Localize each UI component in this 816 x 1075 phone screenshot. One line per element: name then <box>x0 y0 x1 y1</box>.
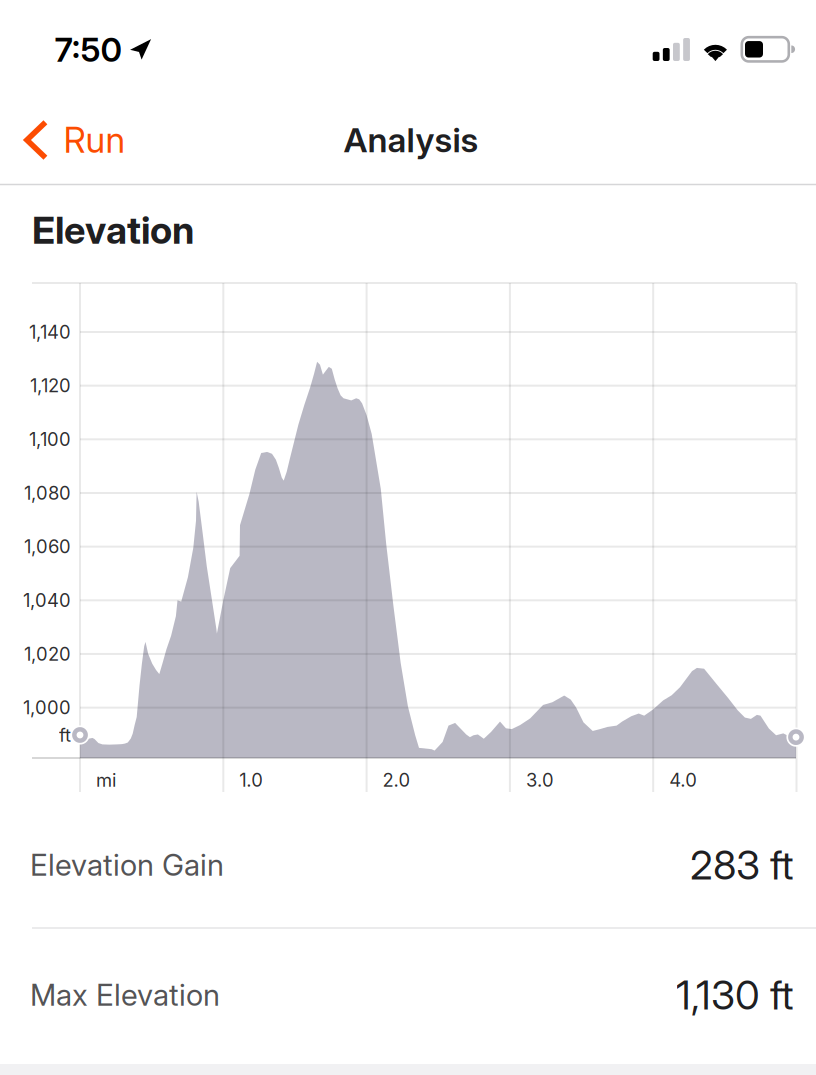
staticText: 283 ft <box>690 841 794 889</box>
staticText: 4.0 <box>669 769 697 791</box>
button[interactable]: Max Elevation <box>0 930 816 1060</box>
staticText: 1,140 <box>29 321 71 343</box>
staticText: 1,100 <box>29 428 71 450</box>
staticText: 1,120 <box>30 374 71 397</box>
staticText: 3.0 <box>526 769 554 791</box>
staticText: 1,080 <box>24 482 71 504</box>
staticText: 1,060 <box>24 535 71 558</box>
staticText: 1.0 <box>239 769 263 791</box>
button[interactable]: Run <box>0 96 122 184</box>
staticText: Run <box>63 119 125 161</box>
staticText: 1,130 ft <box>676 971 794 1019</box>
staticText: ft <box>59 724 71 746</box>
staticText: 1,020 <box>24 643 71 665</box>
staticText: Elevation Gain <box>30 847 224 883</box>
staticText: 7:50 <box>54 29 122 70</box>
staticText: Max Elevation <box>30 977 220 1013</box>
staticText: Analysis <box>343 119 478 160</box>
staticText: 2.0 <box>383 769 411 791</box>
staticText: 1,000 <box>23 696 71 719</box>
button[interactable]: Elevation Gain <box>0 802 816 928</box>
staticText: Elevation <box>32 207 194 253</box>
staticText: 1,040 <box>23 589 71 611</box>
staticText: mi <box>96 769 116 791</box>
